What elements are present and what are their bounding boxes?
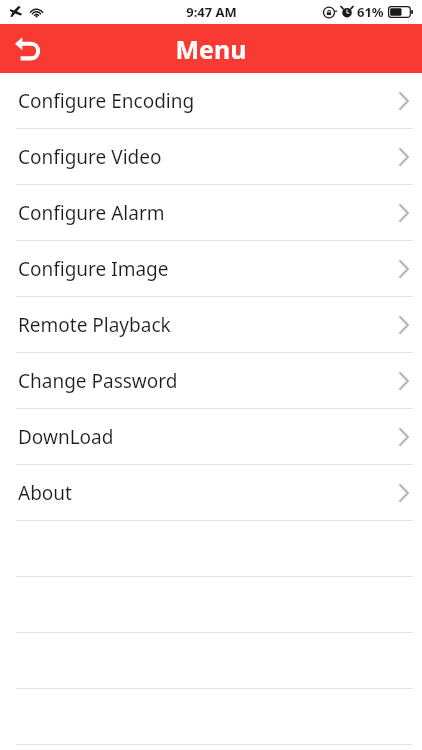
- button[interactable]: Configure Image: [0, 241, 422, 296]
- button[interactable]: Back: [6, 26, 52, 72]
- staticText: Menu: [175, 32, 247, 66]
- staticText: Configure Encoding: [18, 88, 195, 114]
- button[interactable]: Remote Playback: [0, 297, 422, 352]
- button[interactable]: About: [0, 465, 422, 520]
- button[interactable]: Change Password: [0, 353, 422, 408]
- button[interactable]: Configure Alarm: [0, 185, 422, 240]
- staticText: Configure Video: [18, 144, 162, 170]
- button[interactable]: DownLoad: [0, 409, 422, 464]
- staticText: Configure Image: [18, 256, 169, 282]
- staticText: 9:47 AM: [186, 3, 237, 21]
- staticText: 61%: [357, 3, 384, 21]
- button[interactable]: Configure Video: [0, 129, 422, 184]
- staticText: Change Password: [18, 368, 178, 394]
- button[interactable]: Configure Encoding: [0, 73, 422, 128]
- staticText: Configure Alarm: [18, 200, 165, 226]
- staticText: About: [18, 480, 72, 506]
- staticText: Remote Playback: [18, 312, 171, 338]
- staticText: DownLoad: [18, 424, 114, 450]
